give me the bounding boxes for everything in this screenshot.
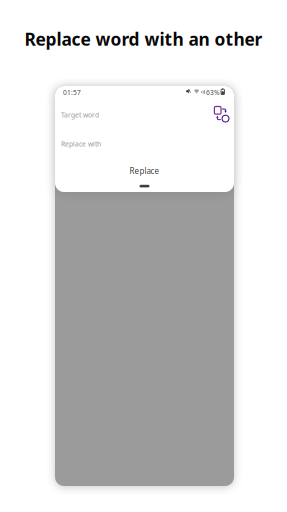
staticText: 01:57	[63, 88, 81, 97]
staticText: Target word	[61, 111, 99, 119]
staticText: 63%	[206, 88, 220, 97]
staticText: Replace with	[61, 140, 101, 148]
staticText: Replace word with an other	[24, 27, 262, 50]
button[interactable]: Swap words	[211, 103, 233, 126]
staticText: Replace	[129, 166, 159, 176]
button[interactable]: Replace	[55, 163, 234, 179]
button[interactable]: Replace with	[55, 134, 195, 154]
button[interactable]: Target word	[55, 105, 195, 125]
